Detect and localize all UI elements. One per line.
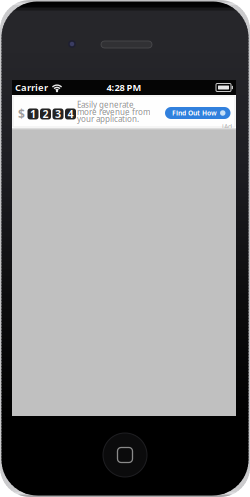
staticText: 4:28 PM: [106, 81, 141, 94]
staticText: 4: [67, 107, 73, 121]
button[interactable]: Find Out How: [165, 107, 230, 119]
staticText: Find Out How: [172, 109, 217, 117]
staticText: Carrier: [15, 81, 48, 94]
staticText: your application.: [77, 114, 139, 124]
staticText: iAd: [222, 122, 232, 131]
staticText: 2: [42, 107, 48, 121]
staticText: $: [18, 106, 25, 122]
staticText: more revenue from: [77, 106, 150, 117]
staticText: 3: [55, 107, 61, 121]
staticText: Easily generate: [77, 99, 134, 110]
staticText: 1: [30, 107, 36, 121]
